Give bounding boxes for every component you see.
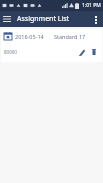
staticText: 1:01 PM [82,2,101,9]
staticText: 2016-05-14 [15,33,44,40]
staticText: Standard 17 [54,33,86,40]
button[interactable]: Edit assignment [76,46,87,57]
button[interactable]: Delete assignment [89,47,99,57]
staticText: 80900 [4,49,17,55]
button[interactable]: More options [89,12,103,26]
staticText: Assignment List [17,14,70,24]
button[interactable]: Open navigation menu [0,12,14,26]
button[interactable]: 2016-05-14 [1,29,102,62]
